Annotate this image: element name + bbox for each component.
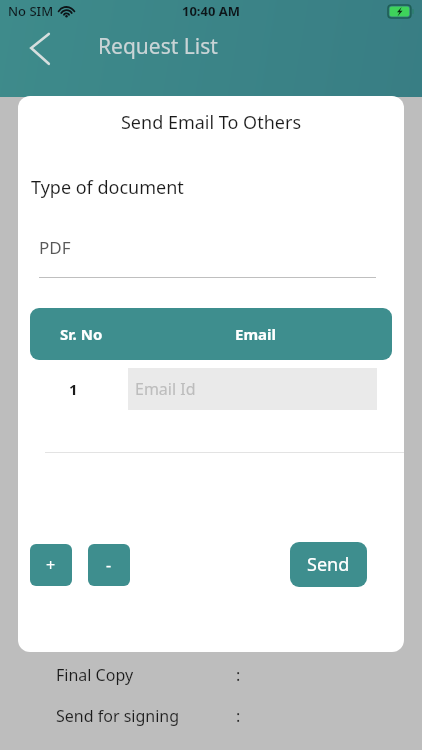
button[interactable]: Add row [30, 544, 72, 586]
staticText: Email Id [135, 378, 196, 400]
staticText: No SIM [8, 2, 54, 20]
button[interactable]: Email Id [128, 368, 377, 410]
staticText: 1 [69, 379, 78, 399]
staticText: Type of document [31, 175, 184, 200]
staticText: PDF [39, 236, 71, 259]
staticText: Send Email To Others [18, 110, 404, 135]
staticText: Sr. No [60, 324, 103, 344]
staticText: Email [235, 324, 276, 344]
staticText: Send for signing [56, 705, 180, 727]
staticText: Final Copy [56, 664, 134, 686]
staticText: - [106, 554, 112, 576]
staticText: + [46, 554, 56, 576]
button[interactable]: Send [290, 542, 367, 587]
staticText: : [236, 664, 241, 686]
staticText: Send [307, 552, 350, 577]
staticText: 10:40 AM [182, 2, 241, 20]
staticText: Request List [98, 32, 218, 61]
button[interactable]: PDF [39, 236, 376, 278]
button[interactable]: Remove row [88, 544, 130, 586]
button[interactable]: Back [18, 26, 62, 70]
staticText: : [236, 705, 241, 727]
